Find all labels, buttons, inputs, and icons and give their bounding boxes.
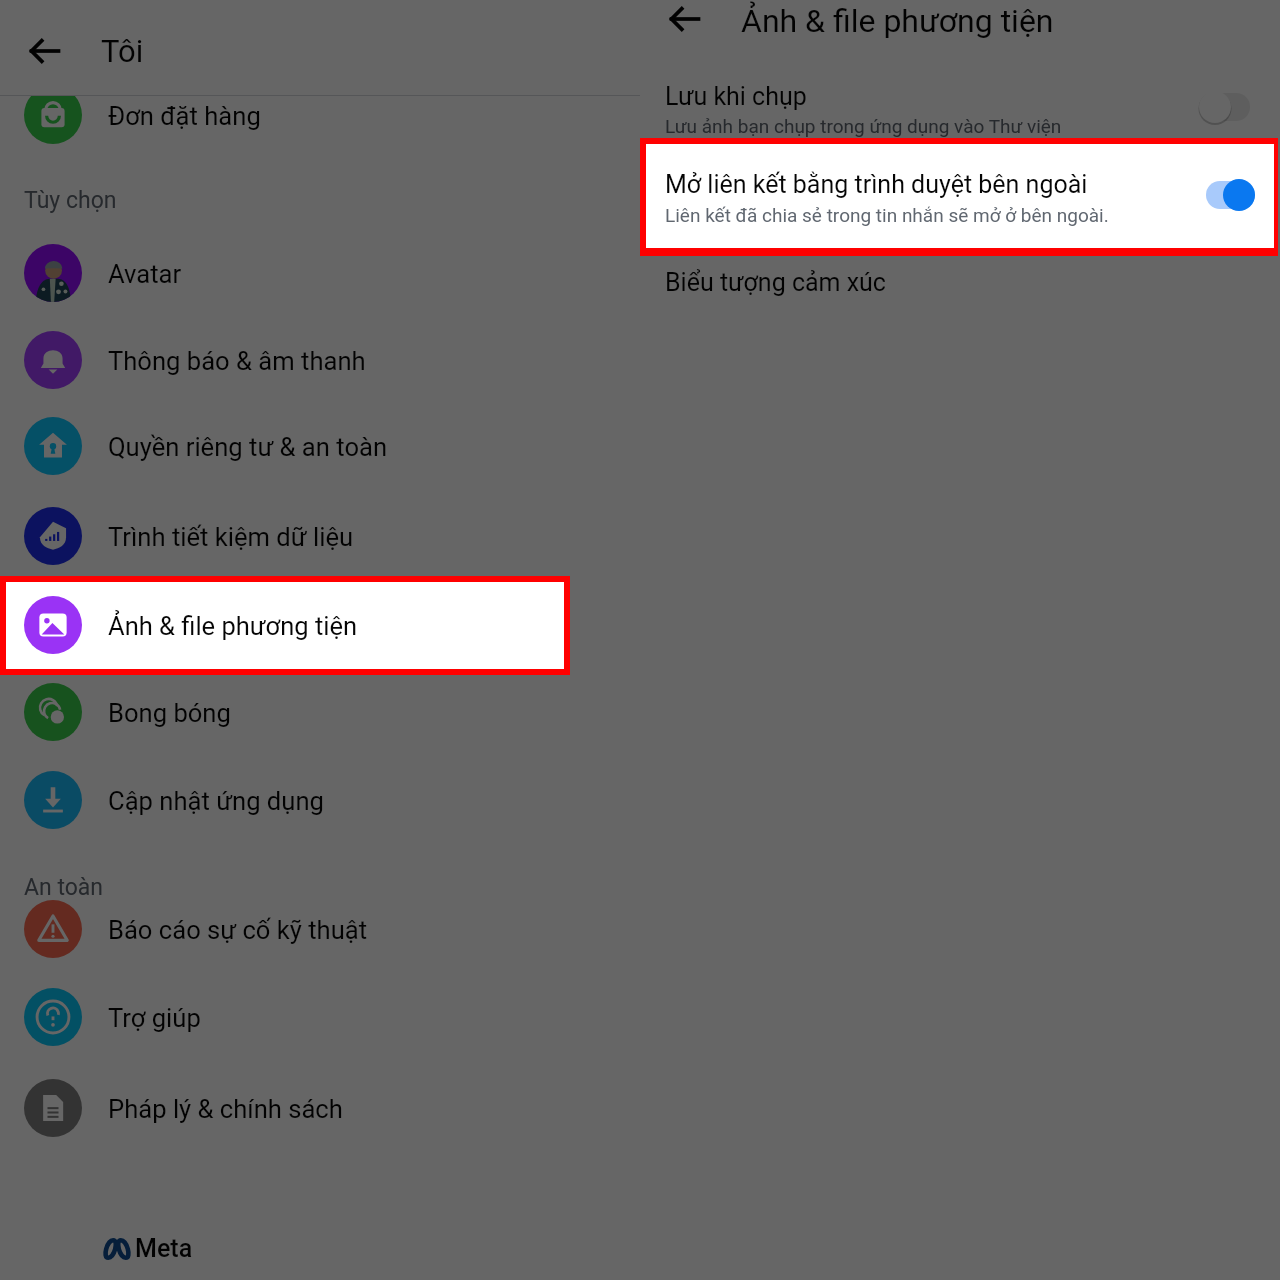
staticText: Ảnh & file phương tiện (741, 2, 1054, 40)
staticText: Trình tiết kiệm dữ liệu (108, 522, 354, 552)
staticText: Avatar (108, 259, 182, 289)
button[interactable]: Back (660, 0, 708, 42)
staticText: Cập nhật ứng dụng (108, 786, 324, 816)
staticText: Liên kết đã chia sẻ trong tin nhắn sẽ mở… (665, 204, 1109, 226)
staticText: Liên kết đã chia sẻ trong tin nhắn sẽ mở… (665, 204, 1109, 226)
staticText: Ảnh & file phương tiện (108, 610, 358, 640)
button[interactable]: Cập nhật ứng dụng (0, 756, 640, 844)
staticText: Meta (135, 1234, 193, 1260)
staticText: Trợ giúp (108, 1003, 201, 1033)
staticText: An toàn (24, 874, 104, 901)
button[interactable] (640, 150, 1280, 240)
staticText: Lưu ảnh bạn chụp trong ứng dụng vào Thư … (665, 115, 1062, 137)
staticText: Biểu tượng cảm xúc (665, 268, 886, 297)
staticText: Quyền riêng tư & an toàn (108, 432, 388, 462)
staticText: Bong bóng (108, 698, 231, 728)
staticText: Mở liên kết bằng trình duyệt bên ngoài (665, 170, 1088, 199)
button[interactable]: Ảnh & file phương tiện (6, 582, 564, 669)
button[interactable]: Ảnh & file phương tiện (0, 580, 640, 668)
staticText: Tùy chọn (24, 187, 117, 214)
staticText: Pháp lý & chính sách (108, 1094, 343, 1124)
button[interactable]: Back (20, 26, 68, 74)
staticText: Báo cáo sự cố kỹ thuật (108, 915, 368, 945)
button[interactable]: Avatar (0, 229, 640, 317)
button[interactable] (640, 250, 1280, 320)
button[interactable]: Thông báo & âm thanh (0, 316, 640, 404)
staticText: Đơn đặt hàng (108, 101, 261, 131)
button[interactable]: Trợ giúp (0, 973, 640, 1061)
button[interactable]: Mở liên kết bằng trình duyệt bên ngoài (646, 144, 1274, 248)
button[interactable]: Bong bóng (0, 668, 640, 756)
button[interactable]: Đơn đặt hàng (0, 96, 640, 159)
button[interactable]: Báo cáo sự cố kỹ thuật (0, 885, 640, 973)
staticText: Tôi (101, 33, 144, 69)
staticText: Lưu khi chụp (665, 82, 807, 111)
button[interactable]: Quyền riêng tư & an toàn (0, 402, 640, 490)
button[interactable] (640, 62, 1280, 140)
button[interactable]: Pháp lý & chính sách (0, 1064, 640, 1152)
staticText: Ảnh & file phương tiện (108, 611, 358, 641)
button[interactable]: Trình tiết kiệm dữ liệu (0, 492, 640, 580)
staticText: Thông báo & âm thanh (108, 346, 366, 376)
staticText: Mở liên kết bằng trình duyệt bên ngoài (665, 170, 1088, 199)
